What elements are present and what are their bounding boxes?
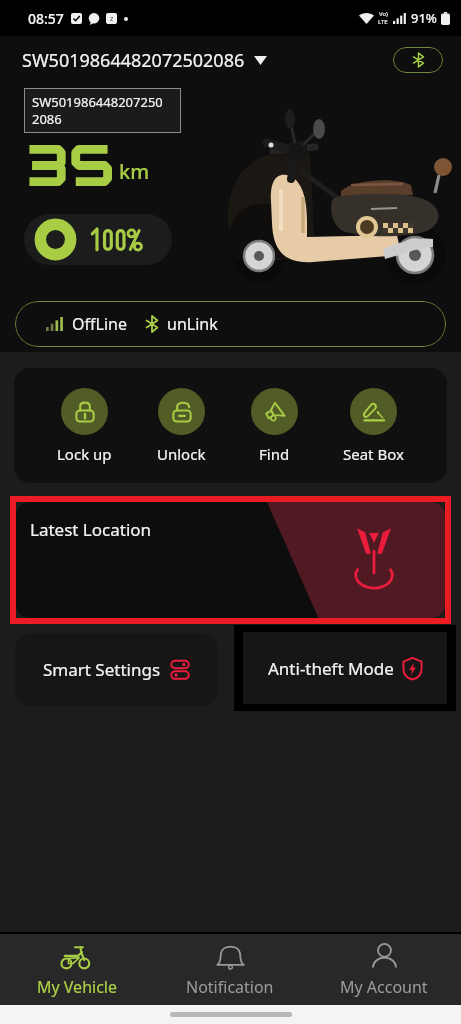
button[interactable]: Lock up <box>55 388 114 464</box>
button[interactable]: Latest Location <box>16 502 445 618</box>
button[interactable]: My Account <box>307 934 461 1005</box>
staticText: km <box>119 158 150 185</box>
button[interactable]: SW5019864482072502086 <box>22 48 267 73</box>
staticText: OffLine <box>72 313 127 335</box>
button[interactable] <box>24 214 172 265</box>
staticText: Latest Location <box>30 518 152 541</box>
staticText: LTE <box>378 18 388 26</box>
staticText: unLink <box>167 313 218 335</box>
button[interactable]: Notification <box>153 934 307 1005</box>
staticText: Seat Box <box>343 444 404 464</box>
button[interactable]: My Vehicle <box>0 934 153 1005</box>
staticText: 91% <box>411 9 437 27</box>
staticText: SW5019864482072502086 <box>22 48 245 73</box>
staticText: Lock up <box>57 444 112 464</box>
staticText: Anti-theft Mode <box>268 657 394 680</box>
button[interactable]: Smart Settings <box>15 633 218 706</box>
staticText: Find <box>259 444 290 464</box>
staticText: My Account <box>340 976 428 998</box>
staticText: 08:57 <box>28 9 64 28</box>
button[interactable]: Find <box>249 388 300 464</box>
staticText: Notification <box>186 976 274 998</box>
button[interactable]: Bluetooth <box>393 47 443 73</box>
staticText: Vo) <box>379 10 388 18</box>
button[interactable]: Seat Box <box>341 388 406 464</box>
staticText: SW501986448207250 2086 <box>32 93 163 128</box>
staticText: My Vehicle <box>37 976 117 998</box>
button[interactable]: OffLine <box>15 301 446 347</box>
staticText: Smart Settings <box>43 658 161 681</box>
button[interactable]: Unlock <box>155 388 208 464</box>
staticText: z <box>110 14 114 24</box>
staticText: Unlock <box>157 444 206 464</box>
button[interactable]: Anti-theft Mode <box>243 632 447 704</box>
